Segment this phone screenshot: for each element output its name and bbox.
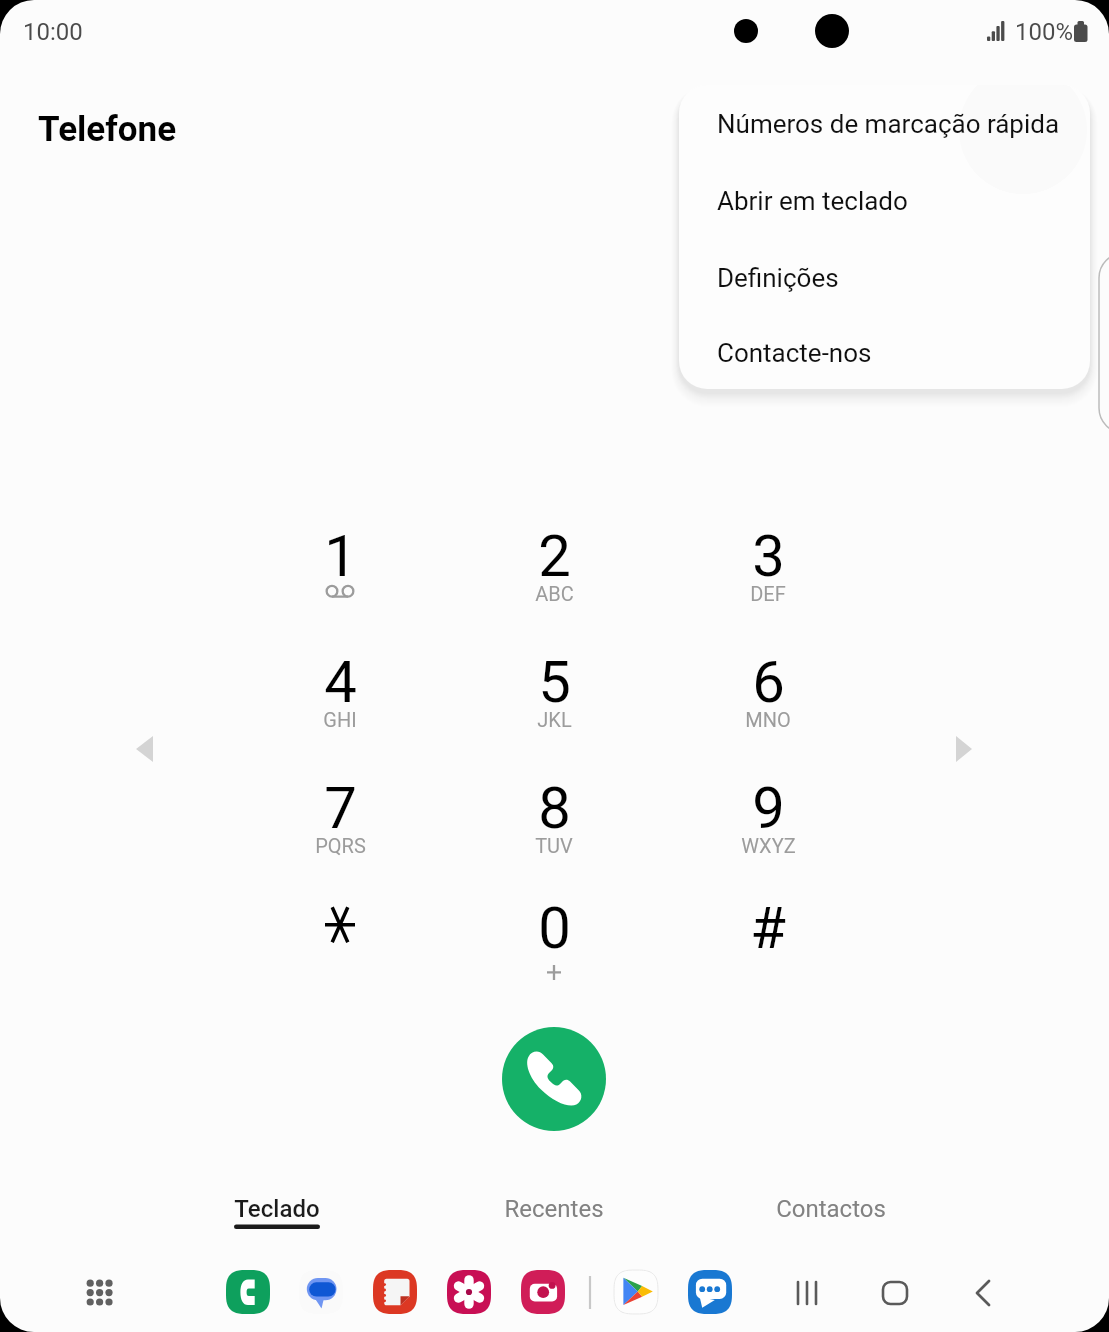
staticText: Telefone <box>38 109 177 150</box>
button[interactable]: 5 <box>492 639 616 751</box>
button[interactable]: Messages <box>299 1270 343 1314</box>
staticText: 6 <box>752 648 785 716</box>
staticText: Números de marcação rápida <box>717 109 1060 139</box>
staticText: 2 <box>538 522 571 590</box>
button[interactable]: 6 <box>706 639 830 751</box>
staticText: DEF <box>750 582 786 605</box>
button[interactable]: Gallery <box>447 1270 491 1314</box>
staticText: JKL <box>537 708 572 731</box>
staticText: 8 <box>538 774 571 842</box>
button[interactable]: Teclado <box>137 1180 417 1236</box>
staticText: 0 <box>538 894 571 962</box>
button[interactable]: Contactos <box>691 1180 971 1236</box>
button[interactable]: 8 <box>492 765 616 877</box>
staticText: 5 <box>538 648 571 716</box>
staticText: Teclado <box>234 1195 320 1223</box>
staticText: # <box>750 894 786 962</box>
button[interactable]: 2 <box>492 513 616 625</box>
button[interactable]: 1 <box>278 513 402 625</box>
staticText: MNO <box>745 708 791 731</box>
staticText: Contactos <box>776 1195 886 1223</box>
button[interactable]: Play Store <box>614 1270 658 1314</box>
staticText: 9 <box>752 774 785 842</box>
button[interactable]: 9 <box>706 765 830 877</box>
button[interactable]: Samsung Notes <box>373 1270 417 1314</box>
button[interactable]: 0 <box>492 885 616 997</box>
button[interactable]: Recents <box>779 1265 835 1321</box>
staticText: Abrir em teclado <box>717 186 908 216</box>
button[interactable]: 3 <box>706 513 830 625</box>
staticText: ABC <box>535 582 574 605</box>
button[interactable]: Números de marcação rápida <box>679 85 1090 162</box>
staticText: GHI <box>323 708 357 731</box>
staticText: WXYZ <box>741 834 796 857</box>
staticText: 3 <box>752 522 785 590</box>
staticText: TUV <box>535 834 573 857</box>
button[interactable]: # <box>706 885 830 997</box>
button[interactable]: 7 <box>278 765 402 877</box>
staticText: 1 <box>324 522 357 590</box>
staticText: Contacte-nos <box>717 338 872 368</box>
staticText: PQRS <box>315 834 366 857</box>
staticText: Definições <box>717 263 839 293</box>
button[interactable] <box>278 885 402 997</box>
staticText: 10:00 <box>23 18 83 46</box>
button[interactable]: Contacte-nos <box>679 316 1090 389</box>
button[interactable]: Call <box>502 1027 606 1131</box>
button[interactable]: All apps <box>80 1272 120 1312</box>
button[interactable]: Back <box>955 1265 1011 1321</box>
button[interactable]: Abrir em teclado <box>679 162 1090 239</box>
staticText: 7 <box>324 774 357 842</box>
staticText: 4 <box>324 648 357 716</box>
button[interactable]: 4 <box>278 639 402 751</box>
button[interactable]: Home <box>867 1265 923 1321</box>
button[interactable]: Definições <box>679 239 1090 316</box>
button[interactable]: Camera <box>521 1270 565 1314</box>
button[interactable]: Recentes <box>414 1180 694 1236</box>
staticText: 100% <box>1015 18 1074 46</box>
button[interactable]: Chat <box>688 1270 732 1314</box>
button[interactable]: Phone <box>226 1270 270 1314</box>
staticText: Recentes <box>504 1195 604 1223</box>
